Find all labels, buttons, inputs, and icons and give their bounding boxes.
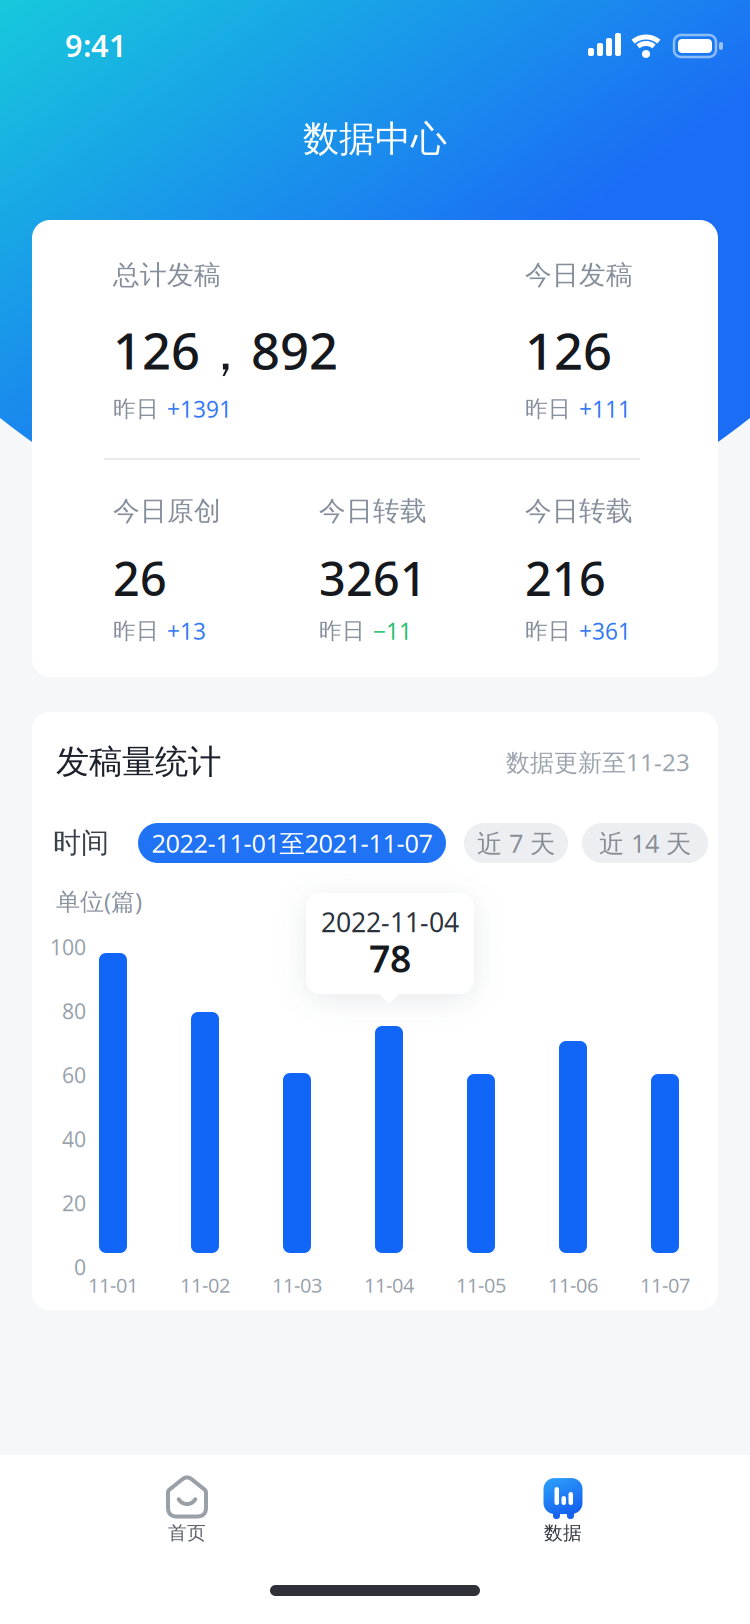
button[interactable]: 近 7 天 — [464, 823, 568, 863]
staticText: 今日转载 — [525, 495, 633, 527]
staticText: 216 — [525, 547, 606, 609]
staticText: 11-05 — [456, 1272, 506, 1298]
staticText: 近 7 天 — [477, 826, 555, 860]
staticText: 数据 — [544, 1521, 582, 1544]
staticText: 总计发稿 — [113, 259, 221, 291]
staticText: 9:41 — [65, 25, 127, 65]
staticText: 11-07 — [640, 1272, 690, 1298]
staticText: 数据中心 — [303, 117, 447, 161]
staticText: 昨日 — [525, 617, 571, 645]
staticText: 2022-11-04 — [321, 904, 459, 940]
staticText: 126，892 — [113, 316, 338, 384]
staticText: 11-06 — [548, 1272, 598, 1298]
staticText: 40 — [62, 1125, 86, 1153]
staticText: 昨日 — [525, 395, 571, 423]
staticText: 11-01 — [88, 1272, 138, 1298]
staticText: 数据更新至11-23 — [506, 746, 690, 778]
staticText: 昨日 — [113, 617, 159, 645]
staticText: 今日原创 — [113, 495, 221, 527]
staticText: 80 — [62, 997, 86, 1025]
staticText: 0 — [74, 1253, 86, 1281]
staticText: 3261 — [319, 547, 427, 609]
staticText: 20 — [62, 1189, 86, 1217]
button[interactable]: 数据 — [478, 1465, 648, 1555]
staticText: 2022-11-01至2021-11-07 — [151, 826, 432, 860]
staticText: 单位(篇) — [56, 885, 142, 917]
button[interactable]: 首页 — [102, 1465, 272, 1555]
staticText: 60 — [62, 1061, 86, 1089]
staticText: +1391 — [167, 394, 232, 424]
button[interactable]: 近 14 天 — [582, 823, 708, 863]
staticText: 昨日 — [113, 395, 159, 423]
staticText: +361 — [579, 616, 631, 646]
staticText: 126 — [525, 316, 612, 384]
staticText: +13 — [167, 616, 206, 646]
staticText: 发稿量统计 — [56, 741, 221, 782]
staticText: 今日转载 — [319, 495, 427, 527]
staticText: 首页 — [168, 1521, 206, 1544]
staticText: 昨日 — [319, 617, 365, 645]
staticText: +111 — [579, 394, 631, 424]
staticText: 11-04 — [364, 1272, 414, 1298]
staticText: 时间 — [53, 826, 109, 860]
staticText: 100 — [50, 933, 86, 961]
staticText: 近 14 天 — [599, 826, 691, 860]
staticText: 11-02 — [180, 1272, 230, 1298]
staticText: 26 — [113, 547, 167, 609]
staticText: 78 — [369, 933, 411, 983]
staticText: 今日发稿 — [525, 259, 633, 291]
button[interactable]: 2022-11-01至2021-11-07 — [138, 823, 446, 863]
staticText: 11-03 — [272, 1272, 322, 1298]
staticText: −11 — [373, 616, 412, 646]
